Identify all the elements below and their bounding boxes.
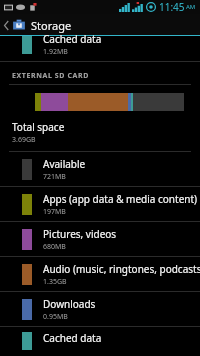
staticText: 0.95MB [43, 312, 68, 322]
staticText: Apps (app data & media content) [43, 192, 198, 206]
staticText: Storage [31, 18, 72, 33]
staticText: Downloads [43, 297, 96, 311]
staticText: AM [186, 3, 196, 11]
staticText: Total space [12, 120, 65, 134]
staticText: 197MB [43, 207, 66, 217]
button[interactable]: Apps (app data & media content) [0, 187, 200, 222]
staticText: 721MB [43, 172, 66, 182]
button[interactable]: Cached data [0, 327, 200, 349]
staticText: 3.69GB [12, 135, 36, 145]
staticText: 1.92MB [43, 47, 68, 57]
button[interactable]: Downloads [0, 292, 200, 327]
staticText: Audio (music, ringtones, podcasts) [43, 262, 200, 276]
staticText: Pictures, videos [43, 227, 117, 241]
staticText: 1.35GB [43, 277, 67, 287]
button[interactable]: Audio (music, ringtones, podcasts) [0, 257, 200, 292]
button[interactable]: Cached data [0, 36, 200, 62]
button[interactable]: Available [0, 152, 200, 187]
button[interactable]: Navigate up [0, 14, 200, 36]
staticText: Cached data [43, 32, 102, 46]
staticText: Available [43, 157, 86, 171]
button[interactable]: Pictures, videos [0, 222, 200, 257]
button[interactable]: Total space [0, 120, 200, 152]
staticText: Cached data [43, 331, 102, 345]
staticText: EXTERNAL SD CARD [12, 71, 89, 81]
staticText: 680MB [43, 242, 66, 252]
staticText: 11:45 [159, 0, 185, 14]
